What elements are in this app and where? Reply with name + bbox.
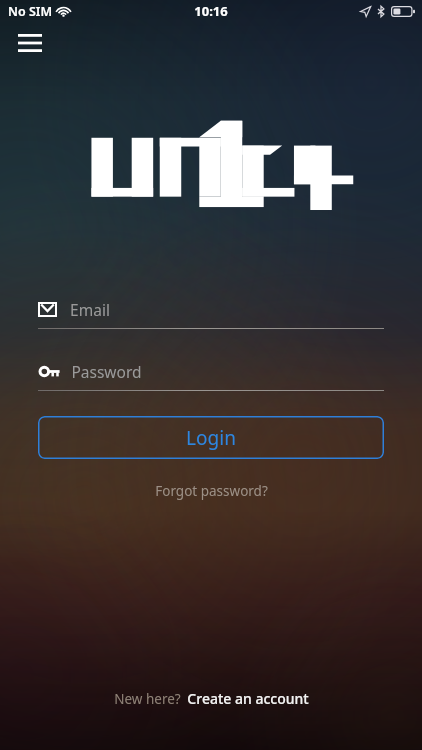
staticText: 10:16 bbox=[194, 2, 228, 20]
button[interactable]: Email bbox=[38, 296, 384, 329]
staticText: Login bbox=[186, 425, 236, 451]
staticText: New here? bbox=[114, 690, 181, 708]
button[interactable]: Forgot password? bbox=[143, 478, 280, 504]
button[interactable]: Password bbox=[38, 358, 384, 391]
button[interactable]: New here? bbox=[100, 683, 323, 714]
staticText: No SIM bbox=[8, 3, 52, 20]
staticText: Create an account bbox=[187, 689, 309, 708]
staticText: Password bbox=[71, 361, 142, 382]
staticText: Email bbox=[70, 299, 110, 320]
staticText: Forgot password? bbox=[155, 482, 268, 500]
button[interactable]: Login bbox=[38, 416, 384, 459]
button[interactable]: Open navigation menu bbox=[8, 26, 52, 60]
